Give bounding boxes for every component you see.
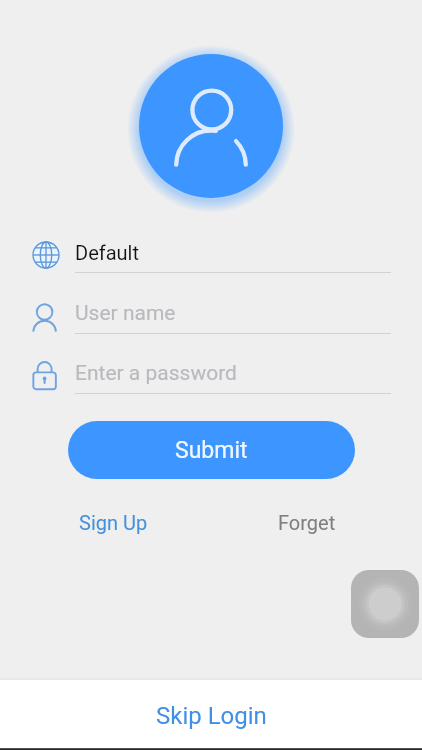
button[interactable]: Capture photo (351, 570, 419, 638)
staticText: User name (75, 301, 176, 326)
button[interactable]: Default (28, 235, 396, 281)
staticText: Forget (278, 511, 336, 534)
staticText: Default (75, 241, 139, 264)
staticText: Skip Login (156, 702, 267, 730)
staticText: Sign Up (79, 511, 148, 534)
button[interactable]: Sign Up (69, 503, 158, 542)
button[interactable]: Skip Login (0, 680, 422, 748)
button[interactable]: User name (28, 296, 396, 342)
button[interactable]: Submit (68, 421, 355, 479)
button[interactable]: Enter a password (28, 356, 396, 402)
staticText: Enter a password (75, 361, 237, 386)
staticText: Submit (175, 437, 248, 464)
button[interactable]: Forget (268, 503, 346, 542)
